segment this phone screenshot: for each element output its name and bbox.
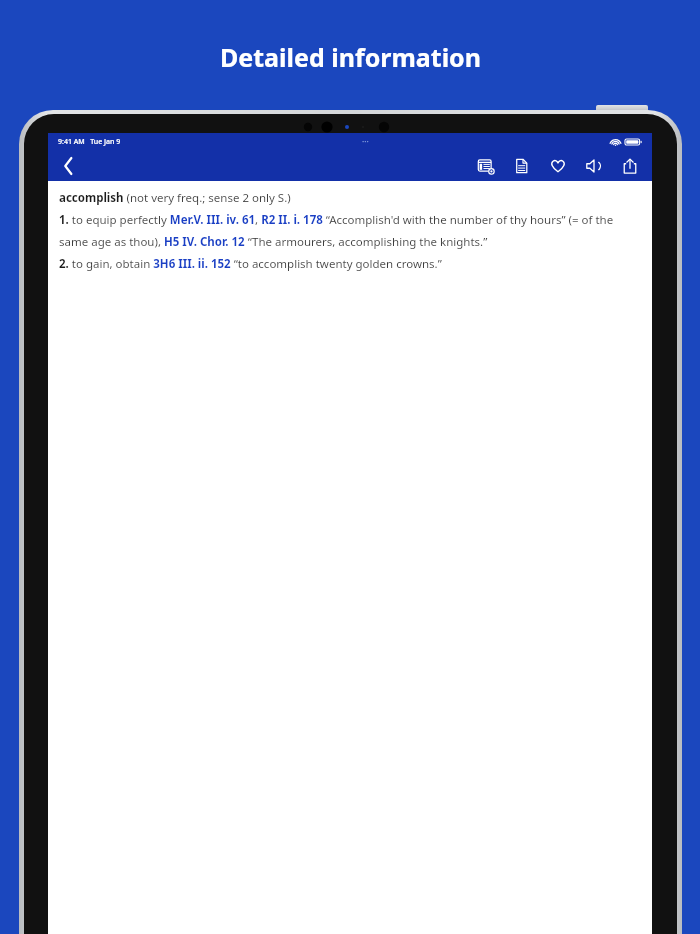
button[interactable]: Document (510, 154, 534, 178)
button[interactable]: Back (54, 152, 82, 180)
button[interactable]: Pages (474, 154, 498, 178)
button[interactable]: Share (618, 154, 642, 178)
staticText: Detailed information (220, 40, 481, 74)
staticText: ••• (362, 138, 369, 146)
button[interactable]: Speak (582, 154, 606, 178)
staticText: 9:41 AM Tue Jan 9 (58, 137, 121, 147)
button[interactable]: Favorite (546, 154, 570, 178)
staticText: accomplish (not very freq.; sense 2 only… (59, 190, 640, 272)
